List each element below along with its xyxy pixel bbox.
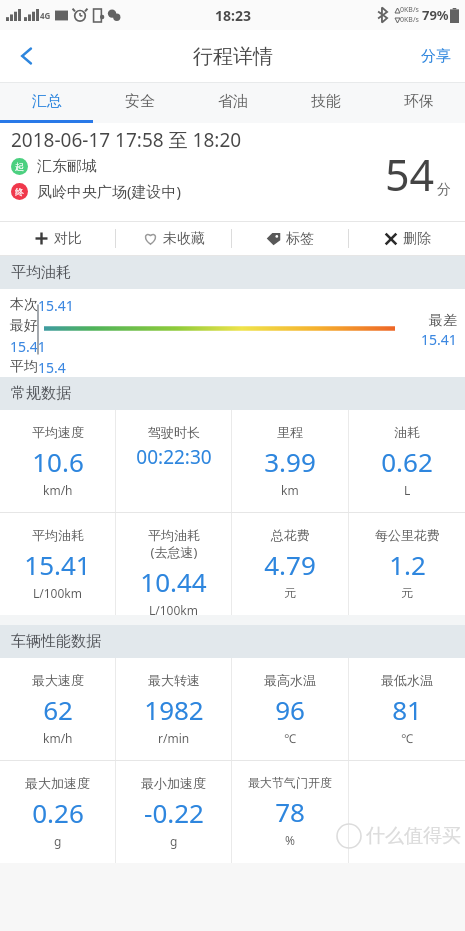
staticText: 环保 — [404, 92, 434, 111]
staticText: 技能 — [311, 92, 341, 111]
staticText: 最小加速度 — [141, 775, 206, 791]
staticText: 79% — [422, 6, 449, 24]
button[interactable]: 未收藏 — [116, 222, 231, 255]
button[interactable]: 标签 — [232, 222, 348, 255]
staticText: 1.2 — [389, 547, 426, 582]
button[interactable]: 最小加速度 — [116, 761, 231, 863]
staticText: 分享 — [421, 47, 451, 66]
button[interactable]: 最大节气门开度 — [232, 761, 348, 863]
staticText: 平均速度 — [32, 424, 84, 440]
staticText: 对比 — [54, 230, 82, 248]
button[interactable]: 省油 — [186, 83, 279, 120]
button[interactable]: 油耗 — [349, 410, 465, 512]
staticText: 标签 — [286, 230, 314, 248]
staticText: -0.22 — [144, 795, 204, 830]
staticText: 2018-06-17 17:58 至 18:20 — [11, 127, 242, 153]
button[interactable] — [349, 761, 465, 863]
staticText: 1982 — [144, 692, 204, 727]
staticText: 15.41 — [38, 296, 74, 315]
staticText: 本次 — [10, 296, 38, 314]
staticText: 15.41 — [421, 330, 457, 349]
staticText: % — [285, 832, 295, 848]
button[interactable]: 每公里花费 — [349, 513, 465, 615]
staticText: L/100km — [33, 585, 82, 601]
button[interactable]: 驾驶时长 — [116, 410, 231, 512]
button[interactable]: 总花费 — [232, 513, 348, 615]
staticText: 安全 — [125, 92, 155, 111]
staticText: 分 — [437, 181, 451, 199]
staticText: 未收藏 — [163, 230, 205, 248]
staticText: 78 — [275, 794, 305, 829]
button[interactable]: 安全 — [93, 83, 186, 120]
staticText: 常规数据 — [11, 384, 71, 403]
staticText: 18:23 — [215, 6, 251, 25]
staticText: 10.44 — [140, 564, 207, 599]
staticText: 54 — [385, 145, 435, 204]
staticText: 15.41 — [10, 337, 46, 356]
staticText: 总花费 — [271, 527, 310, 543]
button[interactable]: 最大加速度 — [0, 761, 115, 863]
staticText: km — [281, 482, 299, 498]
staticText: 平均油耗 — [11, 263, 71, 282]
staticText: 0KB/s — [400, 15, 419, 25]
button[interactable]: 对比 — [0, 222, 115, 255]
staticText: L — [404, 482, 411, 498]
staticText: ℃ — [401, 730, 413, 746]
staticText: 96 — [275, 692, 305, 727]
staticText: 62 — [43, 692, 73, 727]
staticText: 什么值得买 — [366, 824, 461, 848]
staticText: 里程 — [277, 424, 303, 440]
staticText: km/h — [43, 730, 73, 746]
staticText: 删除 — [403, 230, 431, 248]
button[interactable]: Back — [0, 30, 54, 82]
button[interactable]: 里程 — [232, 410, 348, 512]
button[interactable]: 汇总 — [0, 83, 93, 120]
staticText: 平均油耗 (去怠速) — [148, 527, 200, 560]
staticText: 最大节气门开度 — [248, 775, 332, 790]
staticText: ℃ — [284, 730, 296, 746]
staticText: 最好 — [10, 317, 38, 335]
button[interactable]: 平均速度 — [0, 410, 115, 512]
staticText: 最大转速 — [148, 672, 200, 688]
staticText: 油耗 — [394, 424, 420, 440]
button[interactable]: 技能 — [279, 83, 372, 120]
staticText: 元 — [284, 585, 296, 600]
staticText: 平均 — [10, 358, 38, 376]
staticText: km/h — [43, 482, 73, 498]
staticText: 3.99 — [264, 444, 316, 479]
staticText: L/100km — [149, 602, 198, 615]
staticText: 10.6 — [32, 444, 84, 479]
staticText: 最大加速度 — [25, 775, 90, 791]
staticText: g — [54, 833, 62, 849]
staticText: 15.41 — [24, 547, 91, 582]
button[interactable]: 分享 — [407, 30, 465, 82]
staticText: 凤岭中央广场(建设中) — [37, 181, 182, 201]
staticText: 每公里花费 — [375, 527, 440, 543]
button[interactable]: 删除 — [349, 222, 465, 255]
button[interactable]: 平均油耗 — [0, 513, 115, 615]
staticText: 汇东郦城 — [37, 157, 97, 176]
button[interactable]: 环保 — [372, 83, 465, 120]
staticText: 0.62 — [381, 444, 433, 479]
staticText: 4G — [40, 10, 51, 21]
staticText: g — [170, 833, 178, 849]
staticText: 最低水温 — [381, 672, 433, 688]
staticText: 最差 — [429, 312, 457, 330]
staticText: 最高水温 — [264, 672, 316, 688]
button[interactable]: 平均油耗 (去怠速) — [116, 513, 231, 615]
staticText: 00:22:30 — [136, 444, 212, 470]
button[interactable]: 最大速度 — [0, 658, 115, 760]
button[interactable]: 最大转速 — [116, 658, 231, 760]
staticText: 0KB/s — [400, 5, 419, 15]
staticText: 起 — [15, 161, 24, 172]
staticText: 最大速度 — [32, 672, 84, 688]
button[interactable]: 最高水温 — [232, 658, 348, 760]
staticText: r/min — [158, 730, 190, 746]
button[interactable]: 最低水温 — [349, 658, 465, 760]
staticText: 终 — [15, 186, 24, 197]
staticText: 车辆性能数据 — [11, 632, 101, 651]
staticText: 平均油耗 — [32, 527, 84, 543]
staticText: 0.26 — [32, 795, 84, 830]
staticText: 元 — [401, 585, 413, 600]
staticText: 15.4 — [38, 358, 66, 377]
